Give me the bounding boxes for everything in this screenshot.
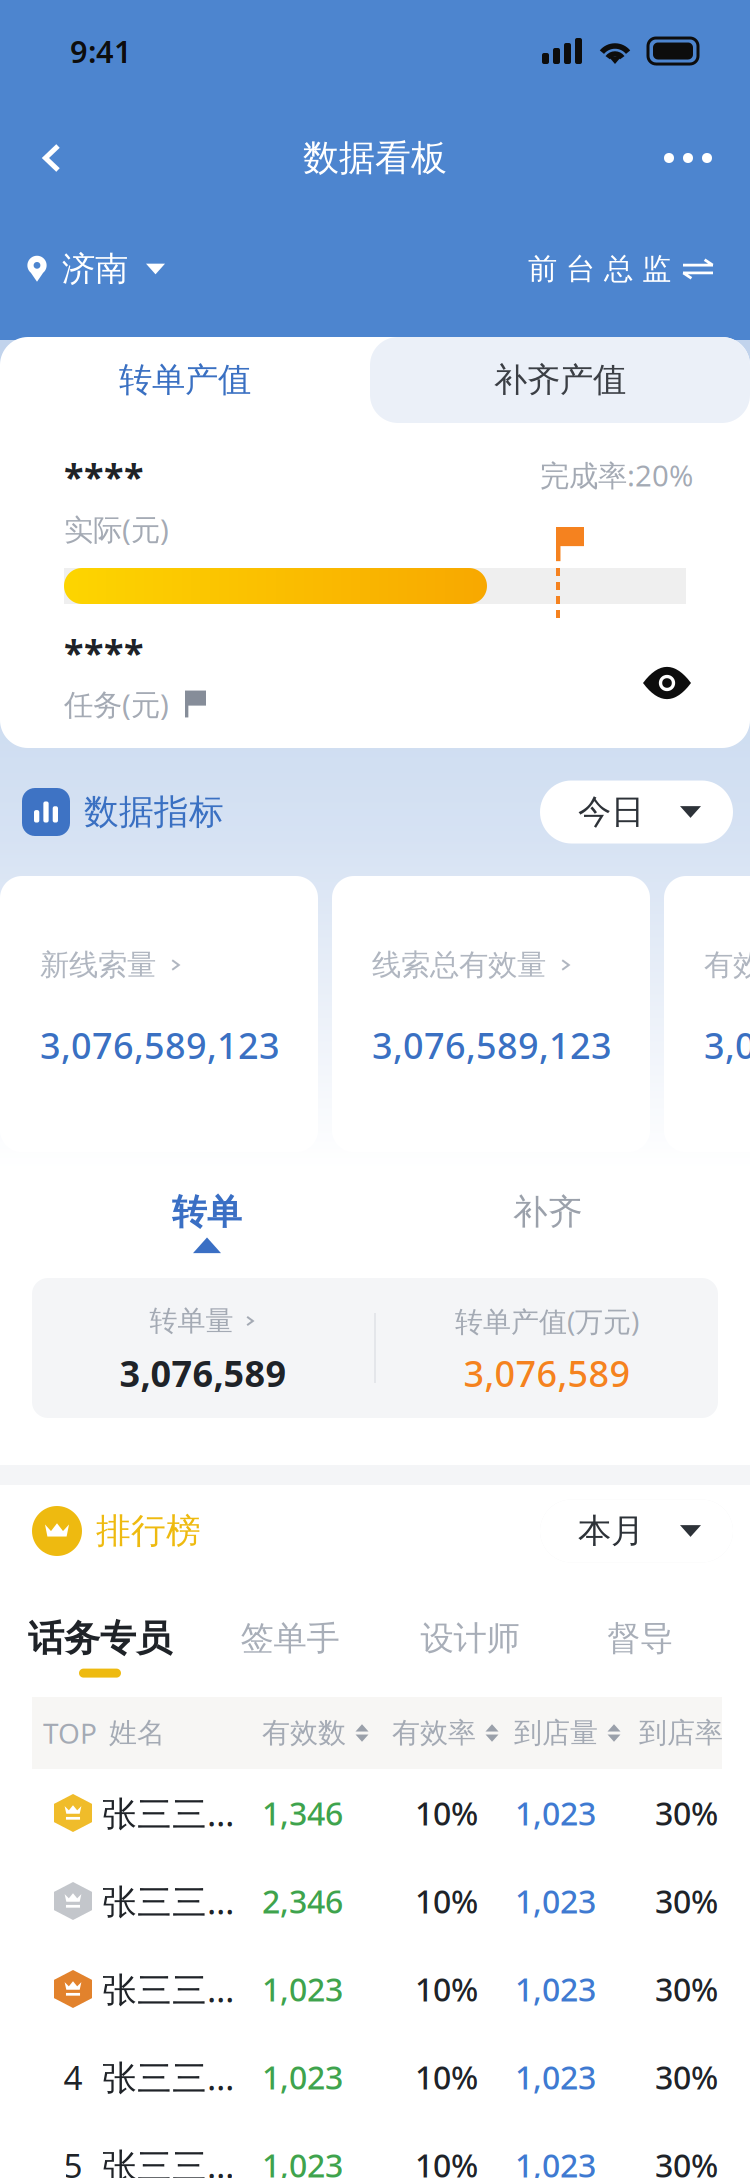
staticText: 任务(元) <box>64 684 169 723</box>
staticText: 1,023 <box>515 1792 596 1834</box>
staticText: 排行榜 <box>96 1510 201 1552</box>
button[interactable]: 张三三… <box>0 1857 750 1945</box>
staticText: 4 <box>63 2055 82 2099</box>
staticText: 30% <box>655 1792 718 1834</box>
staticText: TOP <box>43 1714 97 1752</box>
button[interactable]: 5 <box>0 2121 750 2178</box>
button[interactable]: Back <box>14 120 90 196</box>
staticText: 转单量 <box>149 1304 233 1338</box>
staticText: 1,023 <box>515 1968 596 2010</box>
button[interactable]: 济南 <box>24 238 165 300</box>
staticText: 有效数 <box>262 1716 346 1750</box>
staticText: 有效率 <box>704 947 750 983</box>
staticText: 姓名 <box>109 1716 165 1750</box>
button[interactable]: More options <box>650 120 726 196</box>
staticText: 1,346 <box>262 1792 343 1834</box>
staticText: 10% <box>415 2144 478 2178</box>
button[interactable]: 设计师 <box>380 1618 560 1676</box>
button[interactable]: 转单 <box>0 1152 414 1278</box>
staticText: 1,023 <box>515 2144 596 2178</box>
staticText: 转单产值(万元) <box>455 1302 639 1340</box>
staticText: 实际(元) <box>64 509 169 548</box>
staticText: 5 <box>63 2143 82 2178</box>
staticText: 张三三… <box>102 1966 234 2012</box>
staticText: 30% <box>655 1968 718 2010</box>
staticText: 1,023 <box>515 2056 596 2098</box>
staticText: 1,023 <box>262 2144 343 2178</box>
staticText: 有效率 <box>392 1716 476 1750</box>
button[interactable]: 张三三… <box>0 1769 750 1857</box>
staticText: 1,023 <box>262 2056 343 2098</box>
button[interactable]: 补齐产值 <box>370 337 750 423</box>
button[interactable]: 线索总有效量 <box>332 876 650 1152</box>
staticText: 张三三… <box>102 2054 234 2100</box>
staticText: 督导 <box>607 1618 673 1659</box>
staticText: 30% <box>655 1880 718 1922</box>
staticText: 30% <box>655 2144 718 2178</box>
staticText: 10% <box>415 1968 478 2010</box>
button[interactable]: 话务专员 <box>0 1616 200 1678</box>
staticText: 济南 <box>62 248 128 289</box>
staticText: 10% <box>415 1792 478 1834</box>
staticText: 完成率:20% <box>540 455 693 494</box>
staticText: 本月 <box>578 1510 644 1551</box>
staticText: 9:41 <box>70 31 132 71</box>
button[interactable]: 补齐 <box>414 1152 682 1278</box>
staticText: **** <box>64 628 144 676</box>
button[interactable]: 张三三… <box>0 1945 750 2033</box>
staticText: 设计师 <box>420 1618 519 1659</box>
button[interactable]: Toggle amount visibility <box>632 659 702 707</box>
button[interactable]: 转单产值 <box>0 337 370 423</box>
staticText: 话务专员 <box>28 1616 172 1661</box>
staticText: 张三三… <box>102 1878 234 1924</box>
button[interactable]: 有效率 <box>664 876 750 1152</box>
staticText: 线索总有效量 <box>372 947 546 983</box>
staticText: 30% <box>655 2056 718 2098</box>
staticText: 3,076,589,123 <box>372 1021 612 1069</box>
staticText: 1,023 <box>262 1968 343 2010</box>
staticText: 到店率 <box>639 1716 723 1750</box>
button[interactable]: 新线索量 <box>0 876 318 1152</box>
staticText: 10% <box>415 1880 478 1922</box>
staticText: 3,076,589 <box>463 1349 630 1397</box>
staticText: 3,076,589,123 <box>704 1021 750 1069</box>
button[interactable]: 前 台 总 监 <box>528 238 713 300</box>
staticText: 到店量 <box>514 1716 598 1750</box>
button[interactable]: 签单手 <box>200 1618 380 1676</box>
button[interactable]: 4 <box>0 2033 750 2121</box>
staticText: 张三三… <box>102 2142 234 2178</box>
staticText: **** <box>64 452 144 500</box>
staticText: 前 台 总 监 <box>528 251 671 287</box>
staticText: 数据指标 <box>84 791 224 833</box>
staticText: 2,346 <box>262 1880 343 1922</box>
staticText: 转单 <box>172 1191 242 1233</box>
staticText: 签单手 <box>240 1618 339 1659</box>
button[interactable]: 今日 <box>540 780 733 843</box>
staticText: 3,076,589 <box>119 1349 286 1397</box>
staticText: 补齐 <box>513 1191 583 1233</box>
staticText: 补齐产值 <box>494 359 626 400</box>
staticText: 数据看板 <box>303 136 447 180</box>
button[interactable]: 本月 <box>540 1499 733 1562</box>
staticText: 3,076,589,123 <box>40 1021 280 1069</box>
staticText: 张三三… <box>102 1790 234 1836</box>
staticText: 新线索量 <box>40 947 156 983</box>
staticText: 1,023 <box>515 1880 596 1922</box>
button[interactable]: 督导 <box>560 1618 720 1676</box>
staticText: 今日 <box>578 791 644 832</box>
staticText: 10% <box>415 2056 478 2098</box>
staticText: 转单产值 <box>119 359 251 400</box>
